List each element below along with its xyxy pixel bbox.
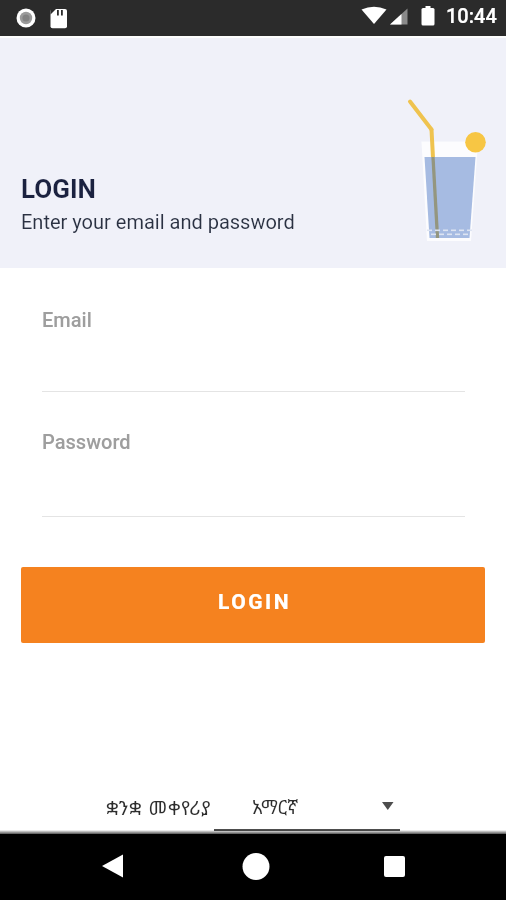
staticText: አማርኛ xyxy=(252,794,298,820)
button[interactable]: Email xyxy=(21,295,485,395)
staticText: 10:44 xyxy=(446,4,497,27)
button[interactable] xyxy=(324,834,452,900)
staticText: LOGIN xyxy=(218,590,291,615)
staticText: ቋንቋ መቀየሪያ xyxy=(106,794,212,821)
button[interactable]: Password xyxy=(21,416,485,520)
button[interactable] xyxy=(60,834,188,900)
staticText: LOGIN xyxy=(21,174,96,204)
staticText: Password xyxy=(42,430,131,453)
staticText: Enter your email and password xyxy=(21,210,295,233)
button[interactable]: ቋንቋ መቀየሪያ xyxy=(95,786,405,822)
staticText: Email xyxy=(42,308,92,331)
button[interactable] xyxy=(192,834,320,900)
button[interactable]: LOGIN xyxy=(21,567,485,643)
